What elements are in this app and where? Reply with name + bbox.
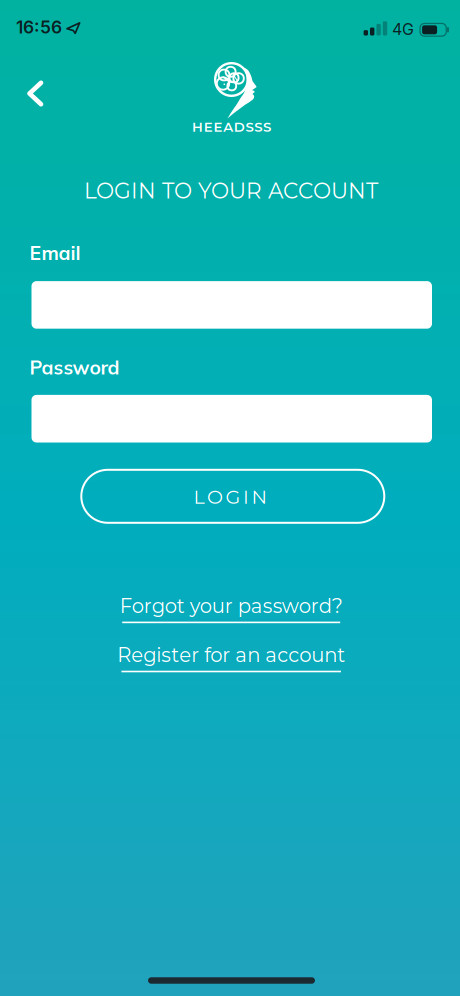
staticText: LOGIN TO YOUR ACCOUNT — [84, 178, 378, 204]
staticText: S — [254, 119, 262, 135]
button[interactable]: L — [80, 469, 385, 524]
staticText: I — [243, 485, 249, 508]
staticText: 4G — [392, 20, 414, 39]
staticText: Password — [29, 355, 119, 379]
button[interactable]: Forgot your password? — [81, 589, 381, 633]
staticText: A — [223, 119, 233, 135]
staticText: 16:56 — [16, 17, 62, 38]
button[interactable]: Back — [17, 80, 53, 106]
staticText: E — [213, 119, 222, 135]
staticText: Email — [29, 240, 80, 265]
staticText: O — [207, 485, 223, 508]
button[interactable]: Password — [31, 395, 432, 442]
staticText: H — [192, 119, 203, 135]
staticText: S — [263, 119, 271, 135]
staticText: E — [204, 119, 213, 135]
staticText: L — [194, 485, 205, 508]
staticText: N — [252, 485, 268, 508]
staticText: Register for an account — [117, 643, 345, 667]
staticText: S — [246, 119, 254, 135]
button[interactable]: Email — [31, 281, 432, 329]
staticText: D — [234, 119, 245, 135]
staticText: G — [226, 485, 241, 508]
staticText: Forgot your password? — [120, 594, 343, 618]
button[interactable]: Register for an account — [81, 638, 381, 682]
